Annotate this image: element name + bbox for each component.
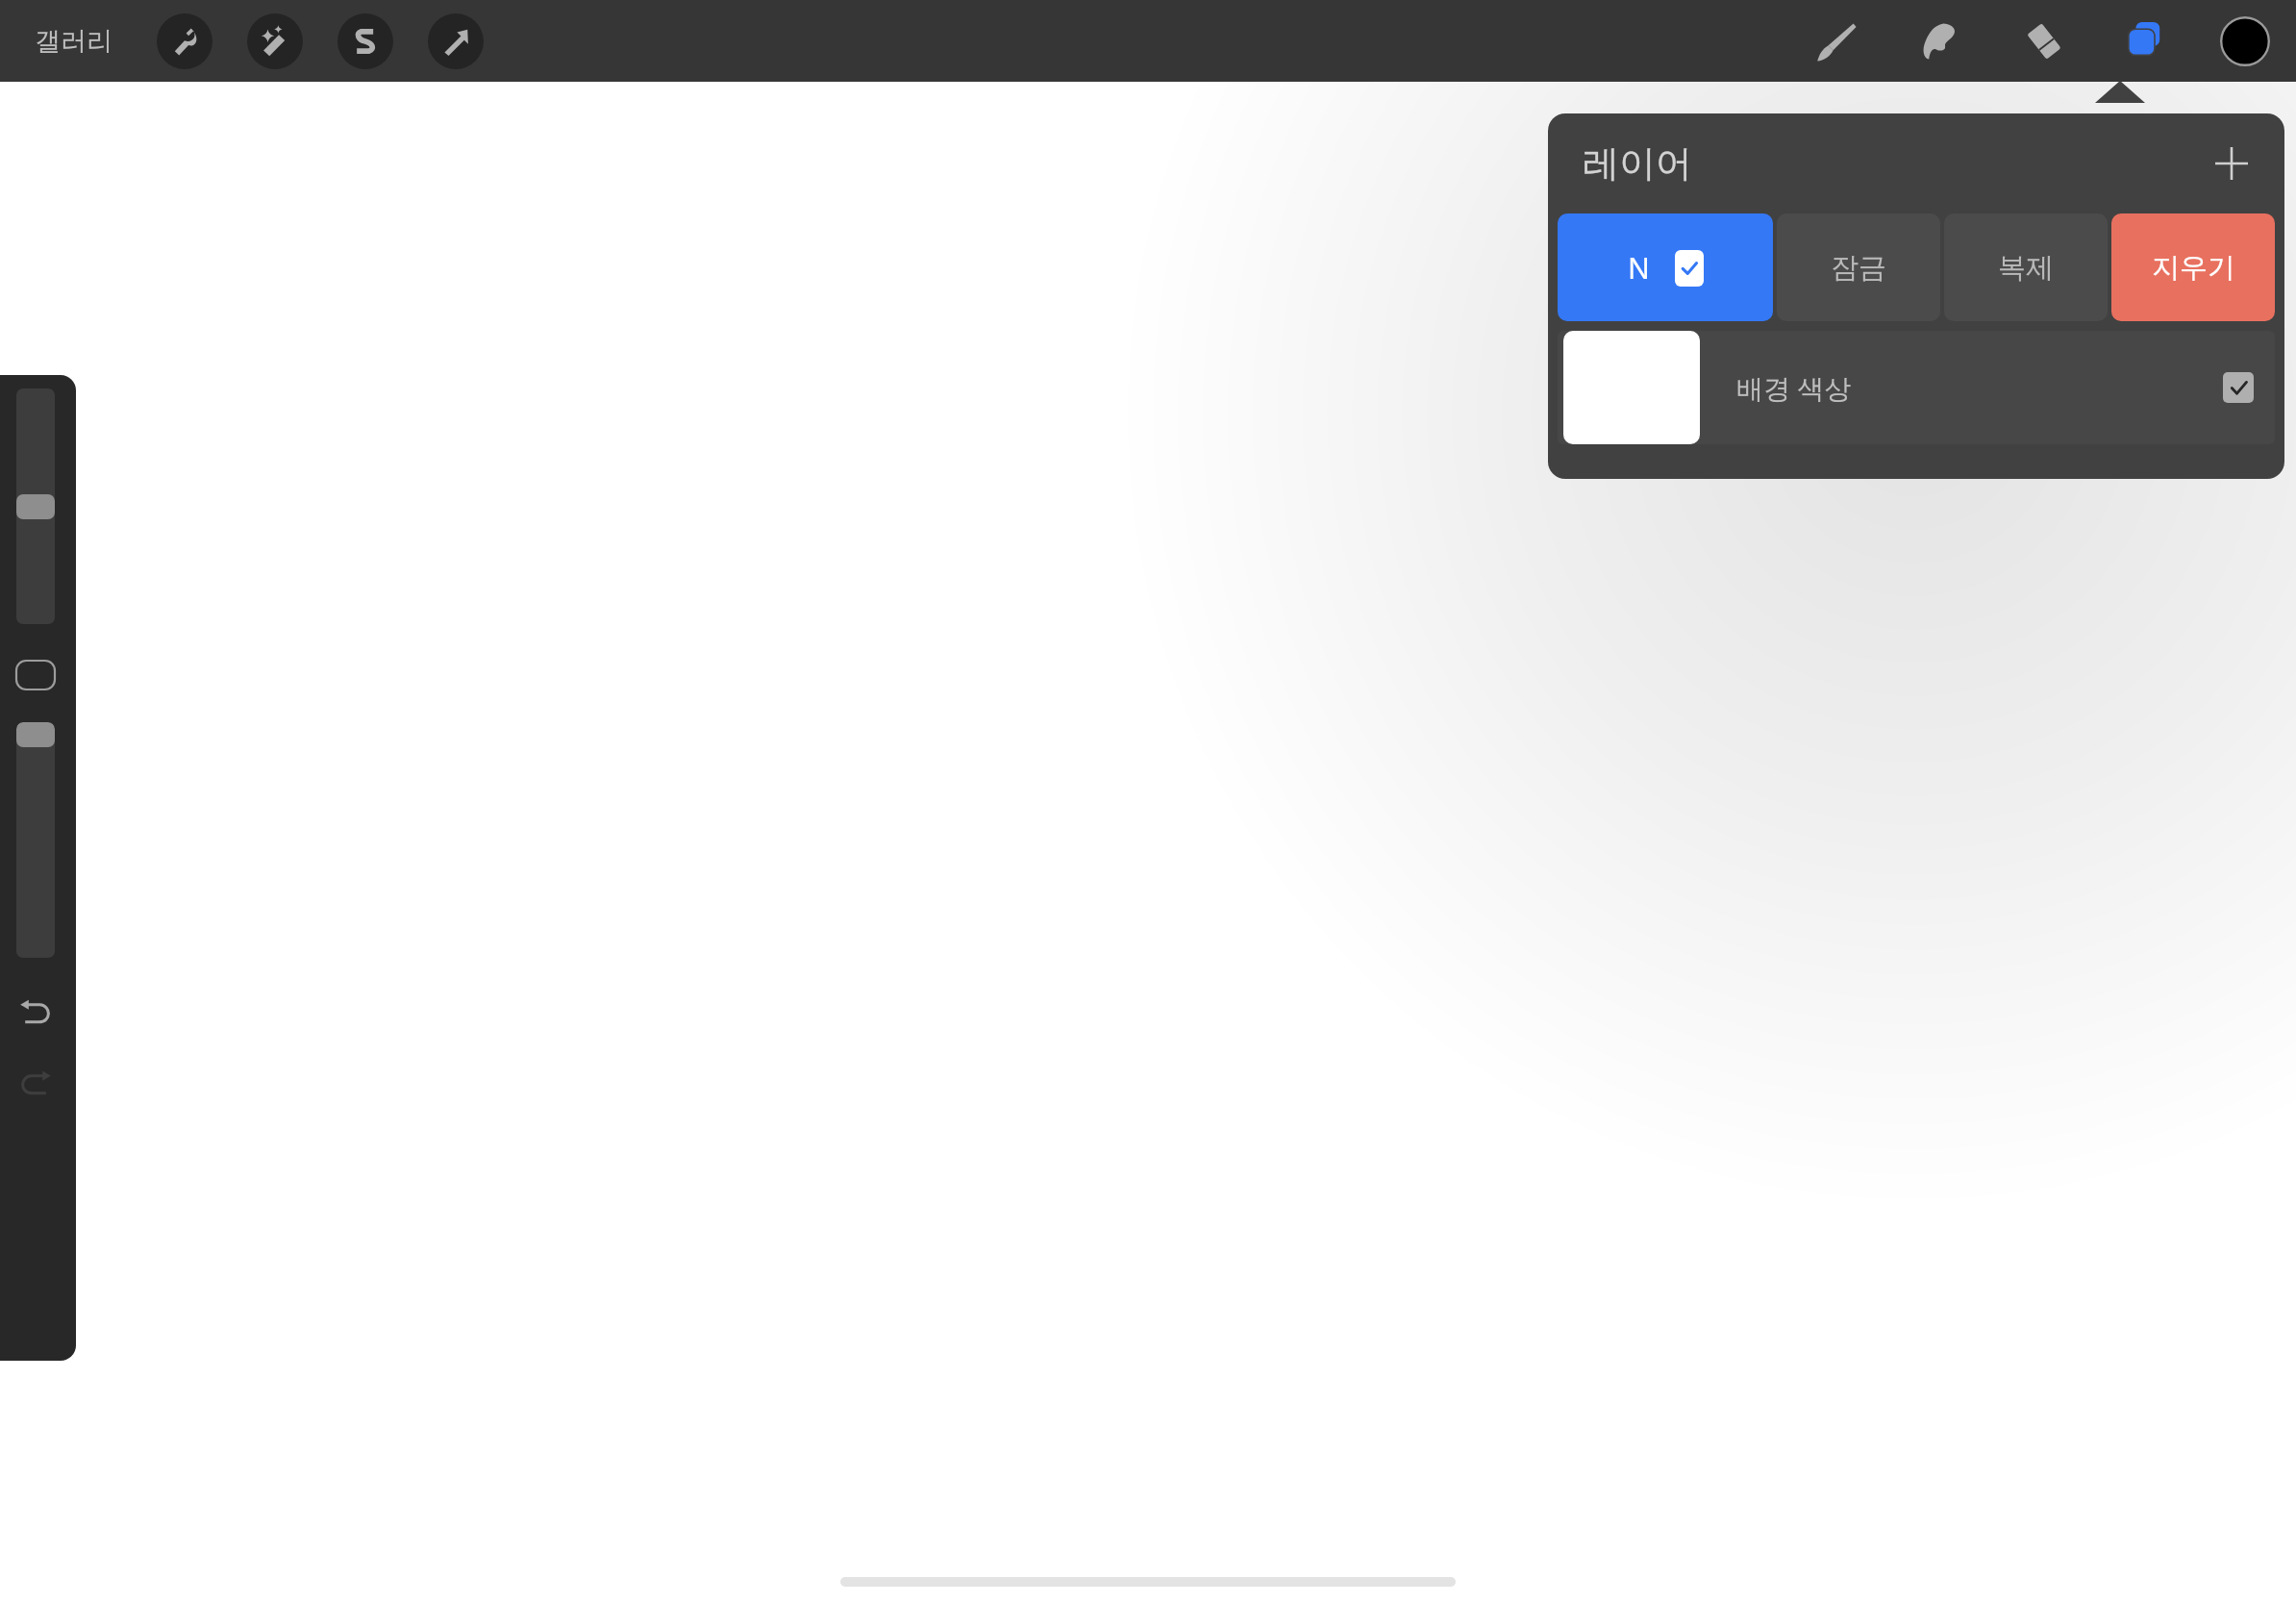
- button[interactable]: Color: [2215, 12, 2275, 71]
- button[interactable]: 배경 색상: [1558, 331, 2275, 444]
- button[interactable]: Adjustments wrench: [157, 13, 212, 69]
- staticText: 잠금: [1831, 250, 1886, 286]
- button[interactable]: Transform: [428, 13, 484, 69]
- staticText: N: [1628, 248, 1650, 288]
- staticText: 배경 색상: [1736, 369, 1852, 406]
- button[interactable]: 복제: [1944, 213, 2108, 321]
- button[interactable]: Background visible: [2223, 372, 2254, 403]
- button[interactable]: Eraser: [2015, 13, 2073, 70]
- button[interactable]: Adjustments magic wand: [247, 13, 303, 69]
- button[interactable]: 지우기: [2111, 213, 2275, 321]
- staticText: 레이어: [1583, 140, 1692, 187]
- button[interactable]: Paint brush: [1808, 13, 1865, 70]
- button[interactable]: 잠금: [1777, 213, 1940, 321]
- staticText: 갤러리: [35, 25, 112, 58]
- button[interactable]: Add layer: [2202, 134, 2261, 193]
- button[interactable]: Smudge: [1911, 13, 1969, 70]
- button[interactable]: Brush size: [16, 388, 55, 624]
- button[interactable]: Layers: [2115, 12, 2175, 71]
- button[interactable]: 갤러리: [27, 19, 120, 63]
- button[interactable]: Opacity: [16, 722, 55, 958]
- button[interactable]: N: [1558, 213, 1773, 321]
- button[interactable]: Modify: [16, 661, 55, 689]
- button[interactable]: Undo: [11, 987, 61, 1037]
- button[interactable]: Selection: [337, 13, 393, 69]
- staticText: 지우기: [2152, 250, 2235, 286]
- staticText: 복제: [1998, 250, 2054, 286]
- button[interactable]: Redo: [11, 1058, 61, 1108]
